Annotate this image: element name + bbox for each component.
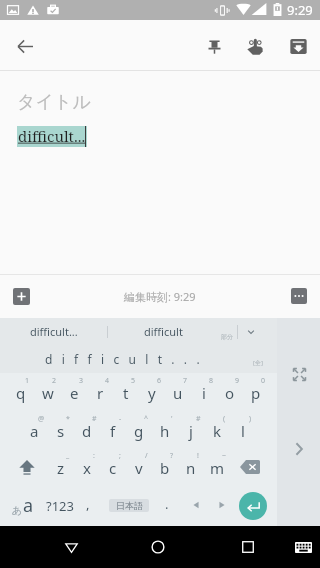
staticText: difficult... xyxy=(18,126,86,146)
button[interactable]: # xyxy=(178,411,204,448)
button[interactable]: Recents xyxy=(227,526,269,568)
staticText: 1 xyxy=(25,376,30,386)
button[interactable]: : xyxy=(74,448,100,485)
button[interactable]: Add xyxy=(13,288,30,305)
staticText: p xyxy=(251,383,261,403)
staticText: 8 xyxy=(209,376,214,386)
button[interactable]: difficult xyxy=(108,318,218,345)
button[interactable]: ) xyxy=(230,411,256,448)
staticText: ) xyxy=(249,414,252,424)
staticText: n xyxy=(186,458,196,478)
staticText: r xyxy=(97,383,104,403)
button[interactable]: Enter xyxy=(235,485,270,526)
staticText: 7 xyxy=(183,376,188,386)
button[interactable]: Fullscreen xyxy=(285,360,313,388)
staticText: w xyxy=(42,383,54,403)
staticText: ' xyxy=(171,414,173,424)
staticText: _ xyxy=(66,451,70,461)
button[interactable]: @ xyxy=(21,411,48,448)
staticText: / xyxy=(145,451,148,461)
staticText: h xyxy=(160,421,170,441)
button[interactable]: Cursor right xyxy=(209,485,235,526)
button[interactable]: * xyxy=(48,411,74,448)
staticText: d xyxy=(82,421,92,441)
button[interactable]: Back xyxy=(5,26,45,66)
button[interactable]: , xyxy=(76,485,100,526)
button[interactable]: 6 xyxy=(139,373,165,411)
staticText: あ xyxy=(12,504,23,517)
button[interactable]: 5 xyxy=(113,373,139,411)
button[interactable]: difficult... xyxy=(0,318,107,345)
staticText: 9:29 xyxy=(287,1,313,19)
staticText: 2 xyxy=(52,376,57,386)
button[interactable]: ? xyxy=(152,448,178,485)
button[interactable]: ' xyxy=(152,411,178,448)
staticText: 9 xyxy=(235,376,240,386)
button[interactable]: Expand suggestions xyxy=(238,318,268,345)
button[interactable]: Pin xyxy=(194,26,234,66)
button[interactable]: ^ xyxy=(126,411,152,448)
staticText: , xyxy=(86,495,90,513)
staticText: difficult... xyxy=(30,324,78,339)
staticText: u xyxy=(173,383,183,403)
button[interactable]: あ xyxy=(5,485,41,526)
button[interactable]: More options xyxy=(291,288,307,304)
button[interactable]: # xyxy=(74,411,100,448)
staticText: m xyxy=(210,458,225,478)
staticText: 3 xyxy=(79,376,84,386)
staticText: - xyxy=(119,414,122,424)
button[interactable]: 日本語 xyxy=(104,485,154,526)
button[interactable]: . xyxy=(155,485,179,526)
button[interactable]: / xyxy=(126,448,152,485)
button[interactable]: Next page xyxy=(285,435,313,463)
button[interactable]: Reminder xyxy=(235,26,275,66)
button[interactable]: 0 xyxy=(243,373,269,411)
staticText: k xyxy=(213,421,222,441)
staticText: g xyxy=(134,421,144,441)
button[interactable]: Home xyxy=(137,526,179,568)
button[interactable]: _ xyxy=(47,448,74,485)
staticText: x xyxy=(83,458,91,478)
button[interactable]: 8 xyxy=(191,373,217,411)
staticText: 日本語 xyxy=(116,500,143,511)
staticText: l xyxy=(241,421,245,441)
button[interactable]: 9 xyxy=(217,373,243,411)
button[interactable]: ?123 xyxy=(40,485,80,526)
staticText: c xyxy=(109,458,117,478)
button[interactable]: Shift xyxy=(7,448,47,485)
staticText: d i f f i c u l t . . . xyxy=(45,351,203,367)
button[interactable]: 2 xyxy=(34,373,61,411)
staticText: 部分 xyxy=(221,333,233,341)
button[interactable]: 4 xyxy=(87,373,113,411)
staticText: タイトル xyxy=(17,91,91,114)
button[interactable]: ! xyxy=(178,448,204,485)
button[interactable]: 1 xyxy=(7,373,34,411)
button[interactable]: Switch keyboard xyxy=(282,526,320,568)
button[interactable]: 7 xyxy=(165,373,191,411)
button[interactable]: ~ xyxy=(204,448,230,485)
staticText: 編集時刻: 9:29 xyxy=(124,289,196,304)
staticText: : xyxy=(93,451,95,461)
staticText: b xyxy=(160,458,170,478)
staticText: a xyxy=(30,421,39,441)
staticText: a xyxy=(23,493,34,518)
button[interactable]: Archive xyxy=(278,26,318,66)
staticText: # xyxy=(196,414,201,424)
button[interactable]: Cursor left xyxy=(183,485,209,526)
staticText: q xyxy=(16,383,26,403)
button[interactable]: - xyxy=(100,411,126,448)
staticText: ?123 xyxy=(46,497,74,515)
staticText: i xyxy=(202,383,206,403)
staticText: difficult xyxy=(144,324,183,339)
staticText: ^ xyxy=(144,414,149,424)
staticText: ? xyxy=(170,451,174,461)
button[interactable]: Backspace xyxy=(230,448,269,485)
staticText: # xyxy=(92,414,97,424)
button[interactable]: ( xyxy=(204,411,230,448)
staticText: 4 xyxy=(105,376,110,386)
button[interactable]: 3 xyxy=(61,373,87,411)
staticText: . xyxy=(165,495,169,513)
staticText: 0 xyxy=(261,376,266,386)
button[interactable]: Back xyxy=(50,526,92,568)
button[interactable]: ; xyxy=(100,448,126,485)
